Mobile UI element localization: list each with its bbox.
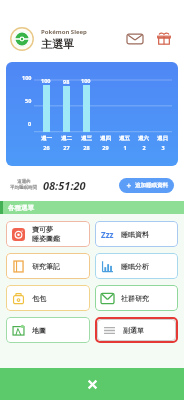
button[interactable]: Zzz <box>95 221 178 247</box>
staticText: 地圖 <box>32 326 46 335</box>
staticText: 週六 <box>138 135 149 142</box>
staticText: 這週的 <box>17 179 31 185</box>
staticText: 週四 <box>100 135 111 142</box>
button[interactable]: 研究筆記 <box>6 253 90 279</box>
staticText: 100 <box>41 77 51 84</box>
staticText: 睡眠資料 <box>121 230 149 239</box>
staticText: 2 <box>142 144 146 151</box>
staticText: 3 <box>161 144 165 151</box>
staticText: 追加睡眠資料 <box>135 182 168 189</box>
button[interactable]: 寶可夢 睡姿圖鑑 <box>6 221 90 247</box>
staticText: 社群研究 <box>121 294 149 303</box>
staticText: 寶可夢 睡姿圖鑑 <box>32 225 60 243</box>
staticText: 50 <box>25 97 32 104</box>
button[interactable]: Gifts <box>154 29 174 49</box>
staticText: 包包 <box>32 294 46 303</box>
staticText: 08:51:20 <box>43 178 86 193</box>
staticText: 98 <box>63 78 70 85</box>
staticText: 睡眠分析 <box>121 262 149 271</box>
button[interactable]: Close <box>0 368 184 400</box>
button[interactable]: 社群研究 <box>95 285 178 311</box>
staticText: 100 <box>81 77 91 84</box>
staticText: ＋ <box>125 181 132 190</box>
button[interactable]: ＋ <box>125 178 168 193</box>
button[interactable]: Mail <box>125 29 145 49</box>
staticText: 週二 <box>61 135 72 142</box>
staticText: 副選單 <box>123 326 144 335</box>
button[interactable]: 副選單 <box>97 319 176 341</box>
staticText: 28 <box>83 144 90 151</box>
staticText: 各種選單 <box>8 204 34 212</box>
button[interactable]: 睡眠分析 <box>95 253 178 279</box>
staticText: 100 <box>22 74 32 81</box>
staticText: Zzz <box>101 229 114 240</box>
staticText: 週三 <box>81 135 92 142</box>
staticText: 1 <box>123 144 127 151</box>
button[interactable]: 包包 <box>6 285 90 311</box>
staticText: 週日 <box>157 135 168 142</box>
staticText: 29 <box>102 144 109 151</box>
staticText: Pokémon Sleep <box>41 28 87 36</box>
staticText: 27 <box>63 144 70 151</box>
staticText: 平均睡眠時間 <box>10 185 37 191</box>
staticText: 週五 <box>119 135 130 142</box>
staticText: 26 <box>43 144 50 151</box>
staticText: 0 <box>28 120 32 127</box>
button[interactable]: 地圖 <box>6 317 90 343</box>
staticText: 週一 <box>41 135 52 142</box>
staticText: 研究筆記 <box>32 262 60 271</box>
staticText: 主選單 <box>41 37 74 51</box>
